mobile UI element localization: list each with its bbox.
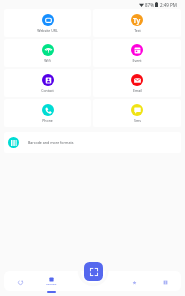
staticText: Contact xyxy=(41,88,54,93)
button[interactable]: Event xyxy=(93,39,181,67)
button[interactable]: Sms xyxy=(93,99,181,127)
staticText: Email xyxy=(133,88,142,93)
button[interactable]: Website URL xyxy=(4,9,91,37)
staticText: Ty xyxy=(133,16,141,25)
button[interactable]: Phone xyxy=(4,99,91,127)
staticText: Sms xyxy=(134,118,141,123)
button[interactable]: Scan xyxy=(84,262,103,281)
staticText: Text xyxy=(134,28,141,33)
staticText: Wifi xyxy=(44,58,51,63)
button[interactable]: Generate xyxy=(36,271,67,291)
staticText: 87% xyxy=(145,2,154,8)
button[interactable]: Ty xyxy=(93,9,181,37)
staticText: Event xyxy=(132,58,142,63)
button[interactable]: Wifi xyxy=(4,39,91,67)
button[interactable]: Contact xyxy=(4,69,91,97)
staticText: Website URL xyxy=(37,28,58,33)
button[interactable]: Book xyxy=(150,271,181,291)
button[interactable]: Email xyxy=(93,69,181,97)
button[interactable]: Barcode and more formats xyxy=(4,132,181,153)
button[interactable]: History xyxy=(4,271,36,291)
staticText: Phone xyxy=(42,118,53,123)
staticText: 2:49 PM xyxy=(160,2,177,8)
staticText: Barcode and more formats xyxy=(28,140,74,145)
button[interactable]: Favorite xyxy=(119,271,150,291)
staticText: Generate xyxy=(46,282,57,285)
